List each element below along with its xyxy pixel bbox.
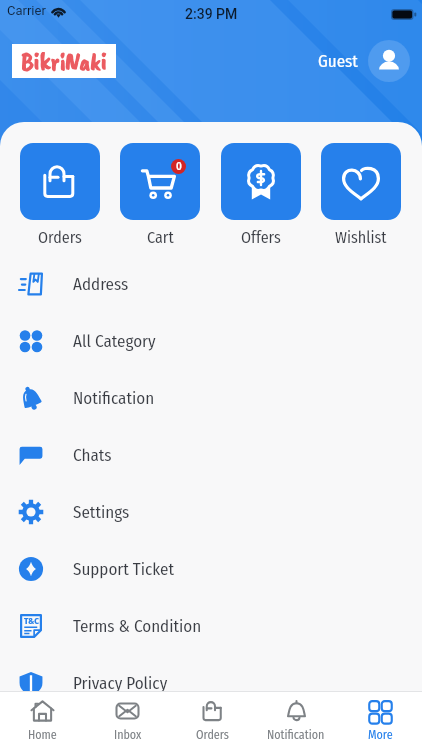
- button[interactable]: Address: [0, 255, 422, 312]
- staticText: More: [368, 728, 393, 742]
- staticText: Home: [28, 728, 57, 742]
- button[interactable]: [321, 143, 401, 220]
- staticText: BikriNaki: [21, 45, 107, 78]
- button[interactable]: Support Ticket: [0, 540, 422, 597]
- button[interactable]: All Category: [0, 312, 422, 369]
- staticText: Inbox: [114, 728, 142, 742]
- staticText: Chats: [73, 445, 112, 465]
- staticText: Support Ticket: [73, 559, 174, 579]
- button[interactable]: Settings: [0, 483, 422, 540]
- staticText: Orders: [196, 728, 229, 742]
- staticText: Cart: [147, 228, 174, 247]
- staticText: Wishlist: [335, 228, 387, 247]
- button[interactable]: [20, 143, 100, 220]
- button[interactable]: Notification: [0, 369, 422, 426]
- staticText: Orders: [38, 228, 82, 247]
- staticText: Address: [73, 274, 129, 294]
- staticText: Privacy Policy: [73, 673, 168, 693]
- button[interactable]: Notification: [254, 693, 338, 749]
- button[interactable]: BikriNaki logo: [12, 44, 116, 78]
- button[interactable]: Profile: [368, 40, 410, 82]
- staticText: Terms & Condition: [73, 616, 202, 636]
- staticText: T&C: [24, 616, 39, 627]
- staticText: All Category: [73, 331, 156, 351]
- staticText: Carrier: [7, 3, 46, 18]
- button[interactable]: More: [338, 693, 422, 749]
- button[interactable]: [221, 143, 301, 220]
- button[interactable]: Home: [0, 693, 85, 749]
- button[interactable]: Chats: [0, 426, 422, 483]
- button[interactable]: Orders: [170, 693, 254, 749]
- staticText: Settings: [73, 502, 130, 522]
- staticText: Notification: [73, 388, 155, 408]
- staticText: Offers: [241, 228, 281, 247]
- button[interactable]: Guest: [318, 51, 358, 71]
- button[interactable]: 0: [120, 143, 200, 220]
- button[interactable]: Inbox: [85, 693, 170, 749]
- staticText: 0: [176, 160, 182, 173]
- button[interactable]: Privacy Policy: [0, 654, 422, 711]
- button[interactable]: T&C: [0, 597, 422, 654]
- staticText: Notification: [267, 728, 325, 742]
- staticText: 2:39 PM: [185, 6, 238, 22]
